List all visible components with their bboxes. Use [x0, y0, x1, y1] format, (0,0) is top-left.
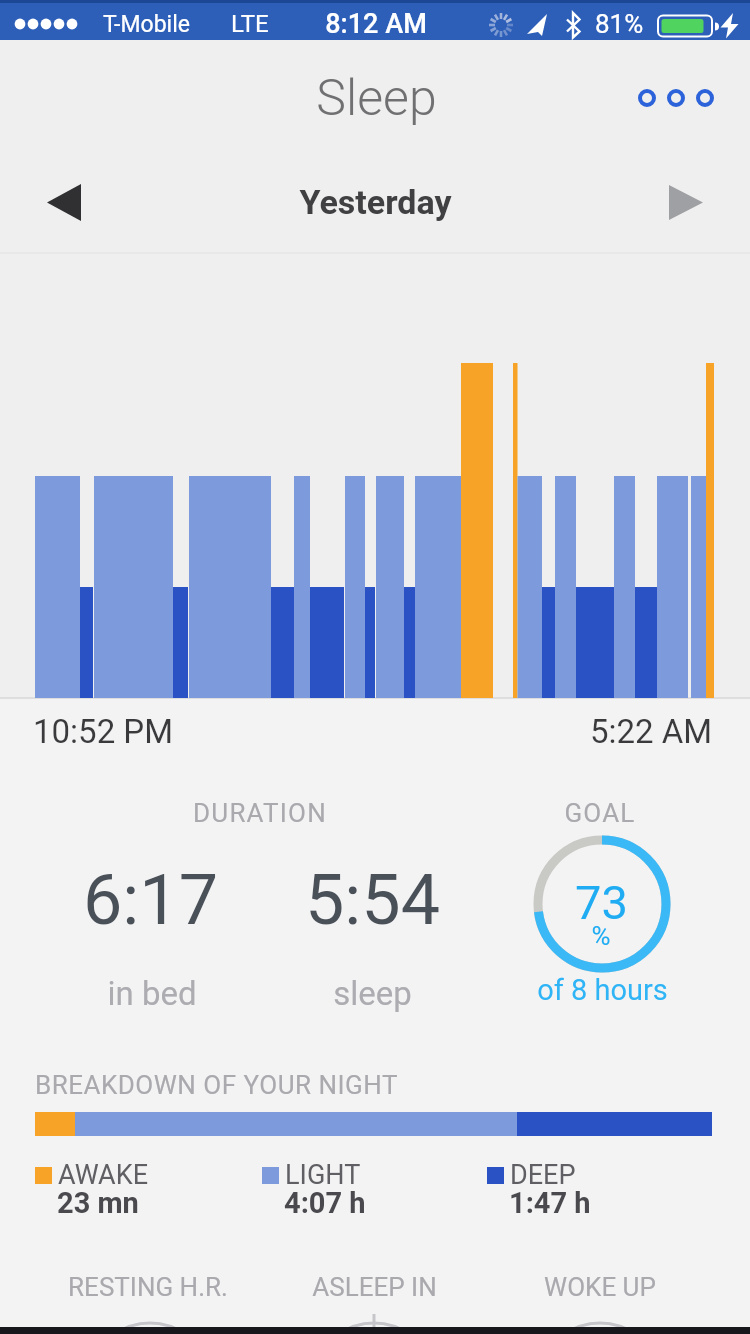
- staticText: 4:07 h: [284, 1186, 366, 1220]
- button[interactable]: [285, 1258, 465, 1327]
- staticText: %: [591, 921, 611, 951]
- button[interactable]: [60, 1258, 240, 1327]
- staticText: GOAL: [564, 798, 636, 828]
- staticText: 6:17: [83, 859, 218, 941]
- button[interactable]: [657, 175, 717, 231]
- staticText: 10:52 PM: [33, 712, 173, 751]
- staticText: Sleep: [316, 69, 437, 128]
- staticText: LTE: [231, 10, 269, 38]
- staticText: Yesterday: [299, 182, 452, 222]
- staticText: BREAKDOWN OF YOUR NIGHT: [35, 1070, 398, 1100]
- staticText: in bed: [107, 974, 197, 1013]
- button[interactable]: [35, 175, 95, 231]
- staticText: WOKE UP: [544, 1272, 656, 1302]
- staticText: 73: [575, 875, 628, 930]
- staticText: 5:22 AM: [590, 712, 713, 751]
- staticText: 5:54: [305, 859, 440, 941]
- staticText: 23 mn: [57, 1186, 139, 1220]
- staticText: ASLEEP IN: [312, 1272, 437, 1302]
- staticText: 81%: [595, 9, 644, 39]
- staticText: 1:47 h: [509, 1186, 591, 1220]
- staticText: T-Mobile: [103, 11, 190, 38]
- button[interactable]: [510, 1258, 690, 1327]
- staticText: RESTING H.R.: [68, 1272, 228, 1302]
- staticText: 8:12 AM: [325, 8, 427, 40]
- staticText: of 8 hours: [537, 973, 668, 1007]
- staticText: AWAKE: [58, 1159, 148, 1191]
- staticText: sleep: [333, 974, 412, 1013]
- staticText: DURATION: [193, 798, 327, 828]
- staticText: LIGHT: [285, 1159, 361, 1191]
- button[interactable]: [280, 178, 470, 228]
- staticText: DEEP: [510, 1159, 576, 1191]
- button[interactable]: [630, 78, 725, 118]
